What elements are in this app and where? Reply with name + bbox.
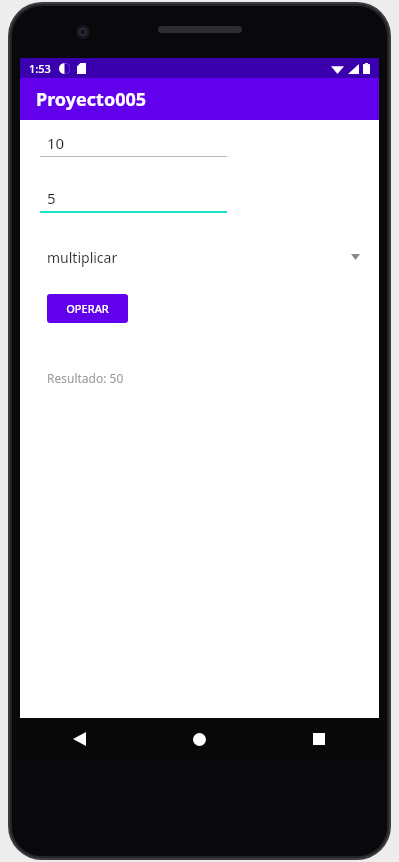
staticText: Resultado: 50: [47, 370, 124, 386]
staticText: 1:53: [29, 61, 51, 76]
staticText: 10: [47, 133, 65, 153]
staticText: 5: [47, 188, 56, 208]
button[interactable]: OPERAR: [47, 294, 128, 323]
button[interactable]: Home: [139, 718, 259, 760]
button[interactable]: Recent apps: [259, 718, 379, 760]
button[interactable]: 5: [40, 185, 227, 213]
button[interactable]: 10: [40, 130, 227, 157]
staticText: multiplicar: [47, 248, 118, 267]
staticText: OPERAR: [66, 301, 109, 316]
staticText: Proyecto005: [36, 87, 147, 112]
button[interactable]: multiplicar: [20, 240, 379, 274]
button[interactable]: Back: [20, 718, 139, 760]
